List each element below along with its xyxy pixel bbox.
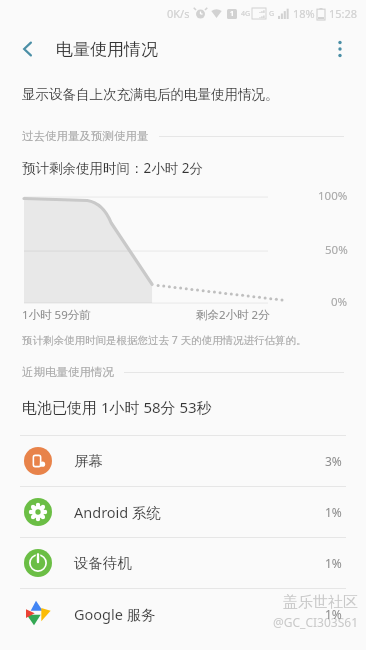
staticText: 1 <box>230 9 235 19</box>
staticText: 1小时 59分前 <box>22 307 91 323</box>
staticText: Android 系统 <box>74 502 325 522</box>
staticText: 屏幕 <box>74 452 325 470</box>
staticText: 盖乐世社区 <box>283 593 358 612</box>
staticText: 1% <box>325 504 342 520</box>
button[interactable]: More options <box>320 29 360 69</box>
staticText: 18% <box>293 6 315 21</box>
staticText: 50% <box>325 242 348 258</box>
staticText: 电量使用情况 <box>56 39 158 60</box>
button[interactable]: Back <box>8 29 48 69</box>
button[interactable]: 设备待机 <box>0 538 366 588</box>
button[interactable]: Google 服务 <box>0 589 366 639</box>
staticText: 近期电量使用情况 <box>22 365 114 379</box>
staticText: 剩余2小时 2分 <box>196 307 270 323</box>
button[interactable]: Android 系统 <box>0 487 366 537</box>
staticText: @GC_CI303S61 <box>273 614 358 630</box>
staticText: 预计剩余使用时间是根据您过去 7 天的使用情况进行估算的。 <box>22 333 307 347</box>
staticText: 显示设备自上次充满电后的电量使用情况。 <box>22 86 279 103</box>
staticText: 设备待机 <box>74 554 325 572</box>
staticText: Google 服务 <box>74 604 325 624</box>
staticText: 3% <box>325 453 342 469</box>
staticText: 4G <box>241 9 251 19</box>
button[interactable]: 屏幕 <box>0 436 366 486</box>
staticText: 1% <box>325 606 342 622</box>
staticText: G <box>269 9 275 19</box>
staticText: 电池已使用 1小时 58分 53秒 <box>22 397 212 417</box>
staticText: 0% <box>331 294 348 310</box>
staticText: 15:28 <box>329 6 358 21</box>
staticText: 预计剩余使用时间：2小时 2分 <box>22 159 203 177</box>
staticText: 100% <box>318 188 348 204</box>
staticText: 1% <box>325 555 342 571</box>
staticText: 0K/s <box>167 6 190 21</box>
staticText: 过去使用量及预测使用量 <box>22 129 149 143</box>
